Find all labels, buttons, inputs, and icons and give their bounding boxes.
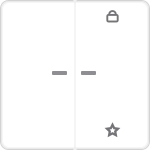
button[interactable]: Right rocker xyxy=(75,0,150,150)
button[interactable]: Left rocker xyxy=(0,0,75,150)
